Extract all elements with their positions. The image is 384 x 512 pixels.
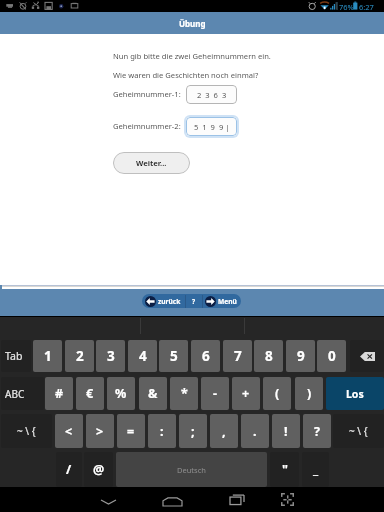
staticText: Übung [179, 18, 206, 29]
staticText: ) [307, 385, 312, 402]
button[interactable]: ; [179, 414, 207, 448]
staticText: - [213, 385, 218, 402]
button[interactable]: " [270, 452, 299, 487]
staticText: ~ \ { [349, 424, 368, 438]
staticText: ? [314, 423, 320, 440]
button[interactable]: € [76, 377, 104, 410]
staticText: Weiter... [136, 158, 167, 168]
button[interactable]: ~ \ { [1, 414, 52, 448]
staticText: ? [192, 297, 196, 306]
staticText: : [160, 423, 164, 440]
staticText: Deutsch [177, 465, 206, 475]
staticText: 2 [76, 347, 84, 365]
staticText: Wie waren die Geschichten noch einmal? [113, 70, 259, 80]
staticText: 76% [339, 2, 354, 12]
button[interactable]: ? [186, 294, 202, 308]
staticText: @ [93, 461, 105, 478]
staticText: Tab [5, 349, 23, 363]
staticText: 7 [234, 347, 242, 365]
staticText: 3 [107, 347, 115, 365]
staticText: , [222, 423, 226, 440]
staticText: 1 [44, 347, 52, 365]
staticText: Geheimnummer-2: [113, 121, 181, 131]
button[interactable]: ) [295, 377, 323, 410]
staticText: > [96, 423, 104, 440]
staticText: = [127, 423, 135, 440]
staticText: ~ \ { [17, 424, 36, 438]
button[interactable]: Switch keyboard [272, 487, 302, 512]
staticText: Nun gib bitte die zwei Geheimnummern ein… [113, 51, 271, 61]
staticText: ; [191, 423, 195, 440]
button[interactable]: Recents [222, 487, 252, 512]
staticText: 6 [202, 347, 210, 365]
button[interactable]: 2 [65, 340, 94, 372]
staticText: 5 1 9 9 | [194, 122, 230, 132]
staticText: ( [275, 385, 280, 402]
button[interactable]: % [107, 377, 135, 410]
button[interactable]: . [241, 414, 269, 448]
staticText: 2 3 6 3 [197, 90, 227, 100]
staticText: 9 [297, 347, 305, 365]
staticText: 0 [328, 347, 336, 365]
button[interactable]: 8 [254, 340, 283, 372]
button[interactable]: 5 [159, 340, 188, 372]
button[interactable]: # [45, 377, 73, 410]
button[interactable]: 1 [33, 340, 62, 372]
staticText: ! [284, 423, 288, 440]
staticText: % [115, 385, 127, 402]
button[interactable]: 6 [191, 340, 220, 372]
staticText: € [86, 385, 94, 402]
button[interactable]: Home [157, 487, 187, 512]
button[interactable]: ( [263, 377, 291, 410]
staticText: 8 [265, 347, 273, 365]
button[interactable]: * [170, 377, 198, 410]
button[interactable]: : [148, 414, 176, 448]
button[interactable]: / [56, 452, 82, 487]
button[interactable]: Los [326, 377, 384, 410]
staticText: Los [346, 387, 364, 401]
button[interactable]: @ [84, 452, 113, 487]
staticText: ABC [5, 387, 25, 401]
staticText: 4 [139, 347, 147, 365]
staticText: Menü [218, 297, 237, 306]
button[interactable]: ! [272, 414, 300, 448]
button[interactable]: ? [303, 414, 331, 448]
button[interactable]: _ [302, 452, 329, 487]
button[interactable]: = [117, 414, 145, 448]
staticText: < [65, 423, 73, 440]
button[interactable]: > [86, 414, 114, 448]
button[interactable]: ~ \ { [333, 414, 384, 448]
button[interactable]: < [55, 414, 83, 448]
button[interactable]: , [210, 414, 238, 448]
button[interactable]: 9 [286, 340, 315, 372]
staticText: # [55, 385, 64, 402]
button[interactable]: 7 [223, 340, 252, 372]
button[interactable]: 3 [96, 340, 125, 372]
button[interactable]: 4 [128, 340, 157, 372]
staticText: + [242, 385, 250, 402]
button[interactable]: zurück [142, 294, 186, 308]
button[interactable]: Deutsch [116, 452, 267, 487]
button[interactable]: Backspace [350, 340, 384, 372]
button[interactable]: Hide keyboard [93, 487, 123, 512]
button[interactable]: & [139, 377, 167, 410]
staticText: zurück [158, 297, 181, 306]
button[interactable]: ABC [1, 377, 44, 410]
button[interactable]: Menü [202, 294, 241, 308]
button[interactable]: Weiter... [113, 152, 190, 174]
button[interactable]: 0 [317, 340, 346, 372]
staticText: * [181, 385, 188, 402]
staticText: 5 [170, 347, 178, 365]
staticText: 6:27 [359, 2, 374, 12]
button[interactable]: 5 1 9 9 | [186, 117, 237, 136]
staticText: / [66, 461, 72, 478]
staticText: _ [313, 461, 319, 478]
button[interactable]: + [232, 377, 260, 410]
staticText: . [253, 423, 257, 440]
button[interactable]: - [201, 377, 229, 410]
staticText: " [282, 461, 288, 478]
button[interactable]: 2 3 6 3 [186, 85, 237, 104]
staticText: Geheimnummer-1: [113, 89, 181, 99]
button[interactable]: Tab [1, 340, 31, 372]
staticText: & [148, 385, 158, 402]
